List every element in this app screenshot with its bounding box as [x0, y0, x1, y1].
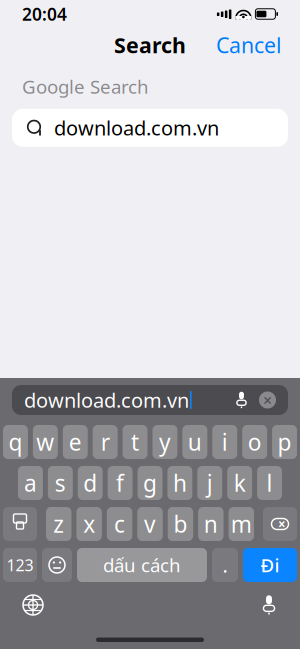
button[interactable]: x: [76, 507, 102, 541]
button[interactable]: y: [152, 425, 177, 459]
staticText: e: [69, 427, 82, 457]
button[interactable]: q: [3, 425, 28, 459]
button[interactable]: dấu cách: [77, 548, 207, 582]
button[interactable]: e: [63, 425, 88, 459]
button[interactable]: Change keyboard: [14, 586, 52, 624]
button[interactable]: p: [272, 425, 297, 459]
staticText: v: [144, 509, 156, 539]
button[interactable]: l: [257, 466, 282, 500]
button[interactable]: h: [167, 466, 192, 500]
staticText: .: [222, 552, 227, 578]
staticText: Google Search: [22, 74, 149, 99]
staticText: Cancel: [216, 31, 282, 59]
staticText: j: [207, 468, 213, 498]
staticText: 20:04: [22, 2, 67, 25]
button[interactable]: a: [18, 466, 43, 500]
staticText: o: [248, 427, 262, 457]
button[interactable]: b: [168, 507, 193, 541]
button[interactable]: i: [212, 425, 237, 459]
staticText: t: [131, 427, 139, 457]
button[interactable]: .: [212, 548, 238, 582]
button[interactable]: Dictate: [228, 391, 255, 409]
button[interactable]: Cancel: [206, 25, 292, 65]
button[interactable]: Delete: [263, 507, 297, 541]
button[interactable]: w: [33, 425, 58, 459]
staticText: b: [173, 509, 187, 539]
button[interactable]: m: [229, 507, 254, 541]
staticText: 123: [6, 554, 33, 576]
staticText: ×: [278, 515, 286, 533]
staticText: k: [234, 468, 246, 498]
staticText: d: [83, 468, 97, 498]
button[interactable]: z: [46, 507, 71, 541]
button[interactable]: Emoji: [42, 548, 72, 582]
staticText: f: [116, 468, 124, 498]
staticText: dấu cách: [103, 553, 181, 577]
button[interactable]: d: [78, 466, 103, 500]
staticText: y: [159, 427, 171, 457]
staticText: r: [101, 427, 110, 457]
staticText: h: [173, 468, 187, 498]
button[interactable]: o: [242, 425, 267, 459]
staticText: a: [24, 468, 37, 498]
staticText: w: [36, 427, 54, 457]
button[interactable]: k: [227, 466, 252, 500]
button[interactable]: v: [137, 507, 163, 541]
button[interactable]: c: [107, 507, 132, 541]
staticText: Search: [114, 31, 186, 59]
button[interactable]: j: [197, 466, 222, 500]
staticText: g: [143, 468, 157, 498]
staticText: m: [231, 509, 252, 539]
staticText: c: [114, 509, 125, 539]
button[interactable]: f: [108, 466, 133, 500]
staticText: p: [278, 427, 292, 457]
staticText: q: [8, 427, 22, 457]
button[interactable]: g: [138, 466, 162, 500]
staticText: i: [222, 427, 228, 457]
staticText: x: [83, 509, 95, 539]
staticText: u: [188, 427, 202, 457]
button[interactable]: 123: [3, 548, 37, 582]
staticText: ×: [263, 389, 272, 411]
button[interactable]: Shift: [3, 507, 37, 541]
staticText: z: [53, 509, 64, 539]
button[interactable]: s: [48, 466, 73, 500]
staticText: l: [267, 468, 273, 498]
button[interactable]: u: [182, 425, 207, 459]
staticText: download.com.vn: [54, 114, 219, 141]
staticText: n: [204, 509, 218, 539]
button[interactable]: r: [93, 425, 118, 459]
button[interactable]: Dictate: [252, 587, 286, 623]
button[interactable]: download.com.vn: [12, 109, 288, 147]
staticText: Đi: [260, 553, 279, 577]
button[interactable]: t: [123, 425, 147, 459]
button[interactable]: Đi: [243, 548, 297, 582]
staticText: download.com.vn: [24, 387, 189, 413]
button[interactable]: Clear text: [255, 389, 276, 411]
staticText: s: [55, 468, 66, 498]
button[interactable]: n: [198, 507, 223, 541]
